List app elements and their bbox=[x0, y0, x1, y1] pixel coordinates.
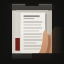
button[interactable]: Document scan photo bbox=[0, 0, 64, 64]
